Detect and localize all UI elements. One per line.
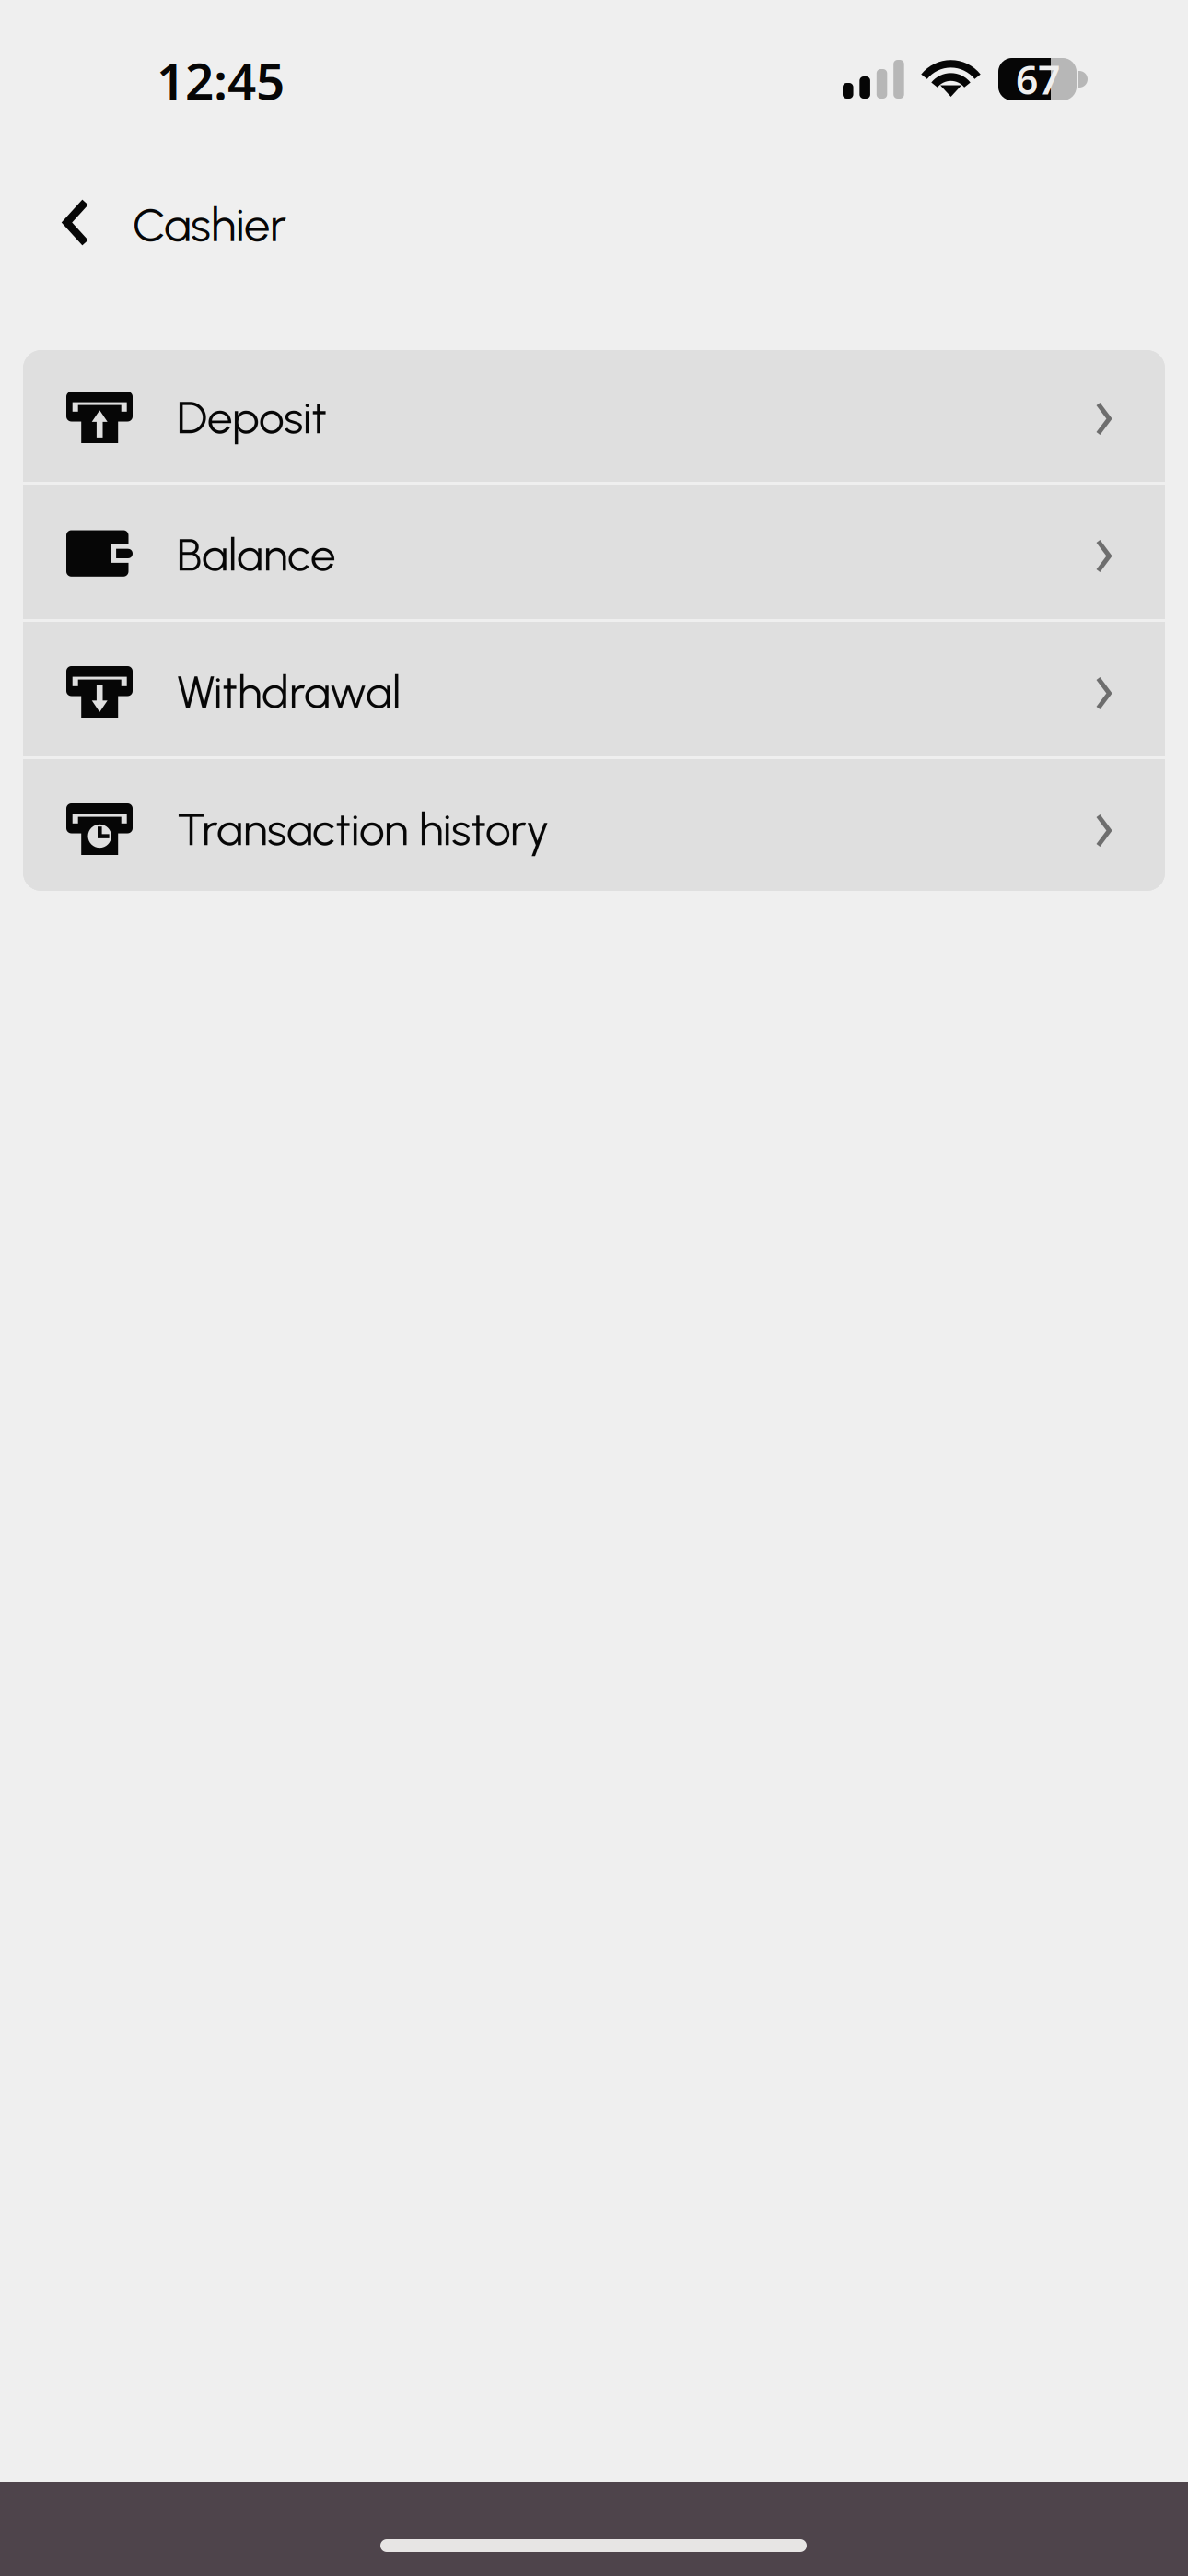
button[interactable]: Transaction history (23, 759, 1165, 894)
staticText: Transaction history (177, 802, 549, 856)
staticText: 67 (1016, 53, 1060, 105)
staticText: 12:45 (157, 47, 285, 114)
button[interactable]: Back (0, 0, 90, 248)
staticText: Cashier (133, 197, 286, 253)
staticText: Deposit (177, 390, 327, 445)
button[interactable]: Balance (23, 485, 1165, 619)
staticText: Balance (177, 527, 336, 582)
button[interactable]: Withdrawal (23, 622, 1165, 756)
button[interactable]: Deposit (23, 347, 1165, 482)
staticText: Withdrawal (177, 665, 401, 719)
